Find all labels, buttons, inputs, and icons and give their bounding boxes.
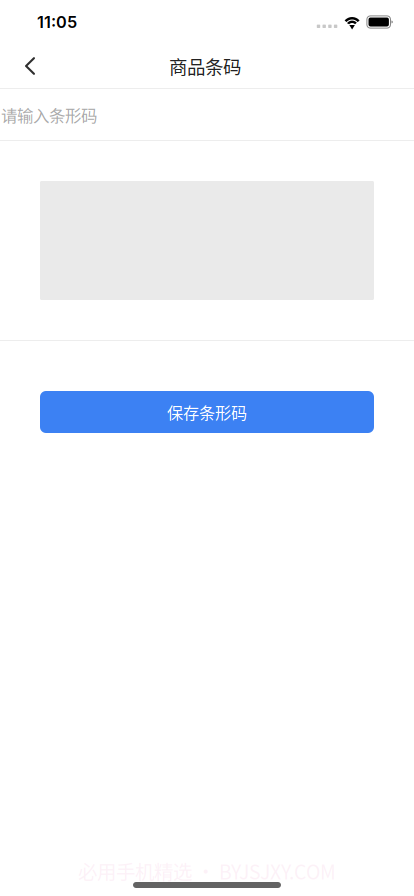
staticText: 请输入条形码	[1, 103, 97, 126]
button[interactable]: 返回	[7, 44, 53, 88]
staticText: 保存条形码	[167, 400, 247, 424]
staticText: 必用手机精选 · BYJSJXY.COM	[78, 857, 336, 885]
button[interactable]: 保存条形码	[40, 391, 374, 433]
button[interactable]: 请输入条形码	[0, 89, 414, 140]
staticText: 商品条码	[169, 53, 241, 79]
staticText: 11:05	[37, 12, 77, 32]
